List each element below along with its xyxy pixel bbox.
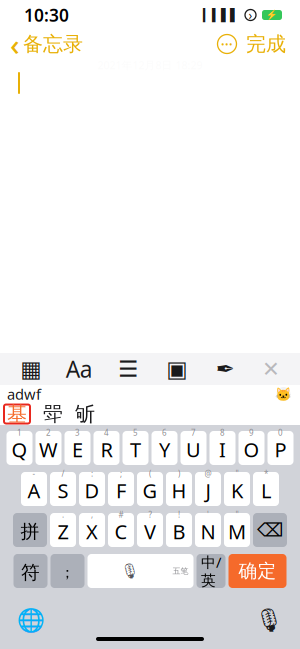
staticText: L	[261, 477, 271, 504]
button[interactable]: ?	[137, 513, 163, 547]
button[interactable]: 完成	[240, 28, 292, 60]
button[interactable]: 基	[4, 404, 30, 423]
staticText: (	[149, 468, 151, 479]
button[interactable]: Aa	[61, 356, 97, 382]
staticText: #	[118, 509, 123, 520]
button[interactable]: 斪	[72, 404, 98, 423]
staticText: Y	[159, 436, 170, 463]
staticText: 备忘录	[23, 32, 83, 56]
button[interactable]: '	[195, 513, 221, 547]
staticText: 中/英	[201, 552, 221, 590]
staticText: J	[205, 477, 210, 504]
staticText: 6	[162, 427, 167, 438]
staticText: 基	[7, 402, 27, 426]
staticText: Z	[57, 518, 68, 545]
staticText: *	[264, 468, 268, 479]
staticText: 🐱	[275, 386, 292, 402]
staticText: ,	[91, 509, 93, 520]
staticText: @	[204, 468, 211, 479]
button[interactable]: .	[50, 513, 76, 547]
staticText: 确定	[238, 559, 276, 582]
staticText: 5	[133, 427, 138, 438]
button[interactable]: ☰	[110, 356, 146, 382]
staticText: ✒	[216, 356, 235, 382]
staticText: ⚡	[266, 10, 278, 20]
button[interactable]: ✒	[207, 356, 243, 382]
button[interactable]: 4	[93, 431, 119, 465]
staticText: 🌐	[17, 607, 45, 633]
button[interactable]: @	[195, 472, 221, 506]
button[interactable]: Dictation	[252, 605, 286, 635]
button[interactable]: Delete	[253, 513, 287, 547]
button[interactable]: ▦	[13, 356, 49, 382]
button[interactable]: ,	[79, 513, 105, 547]
staticText: S	[57, 477, 68, 504]
button[interactable]: 1	[6, 431, 32, 465]
button[interactable]: 0	[267, 431, 293, 465]
button[interactable]	[50, 554, 84, 588]
button[interactable]: /	[50, 472, 76, 506]
button[interactable]: 斝	[40, 404, 66, 423]
staticText: ▎▍▌▌	[203, 8, 239, 22]
button[interactable]: "	[224, 513, 250, 547]
button[interactable]: 中/英	[196, 554, 225, 588]
button[interactable]: 5	[122, 431, 148, 465]
staticText: U	[186, 436, 201, 463]
staticText: •••	[221, 38, 233, 50]
staticText: 2	[46, 427, 51, 438]
staticText: O	[243, 436, 259, 463]
staticText: "	[235, 509, 238, 520]
staticText: T	[130, 436, 141, 463]
button[interactable]: Close	[256, 356, 286, 382]
button[interactable]: ;	[108, 472, 134, 506]
button[interactable]	[13, 513, 47, 547]
button[interactable]	[13, 554, 47, 588]
button[interactable]: )	[166, 472, 192, 506]
staticText: 7	[191, 427, 196, 438]
staticText: D	[84, 477, 99, 504]
staticText: B	[172, 518, 185, 545]
staticText: Q	[11, 436, 27, 463]
staticText: E	[72, 436, 83, 463]
button[interactable]: 6	[151, 431, 177, 465]
staticText: M	[228, 518, 246, 545]
button[interactable]: 9	[238, 431, 264, 465]
staticText: 9	[249, 427, 254, 438]
staticText: .	[62, 509, 64, 520]
staticText: 1	[17, 427, 22, 438]
staticText: W	[39, 436, 58, 463]
button[interactable]: ‹	[0, 20, 83, 67]
staticText: 符	[21, 561, 40, 584]
button[interactable]: !	[166, 513, 192, 547]
button[interactable]: (	[137, 472, 163, 506]
button[interactable]: ▣	[159, 356, 195, 382]
staticText: N	[200, 518, 215, 545]
staticText: 🎙	[120, 563, 139, 579]
button[interactable]: 2	[35, 431, 61, 465]
staticText: -	[32, 468, 35, 479]
button[interactable]: -	[21, 472, 47, 506]
button[interactable]: 7	[180, 431, 206, 465]
staticText: I	[219, 436, 226, 463]
staticText: ☰	[118, 356, 138, 382]
button[interactable]: Switch keyboard	[14, 605, 48, 635]
button[interactable]: *	[253, 472, 279, 506]
staticText: ▣	[166, 356, 187, 382]
button[interactable]: :	[79, 472, 105, 506]
staticText: G	[142, 477, 157, 504]
staticText: )	[178, 468, 180, 479]
button[interactable]: "	[224, 472, 250, 506]
staticText: 0	[278, 427, 283, 438]
staticText: ✕	[262, 357, 280, 381]
staticText: H	[171, 477, 186, 504]
staticText: P	[274, 436, 286, 463]
staticText: K	[231, 477, 243, 504]
button[interactable]: More	[214, 31, 240, 57]
button[interactable]: #	[108, 513, 134, 547]
button[interactable]: 3	[64, 431, 90, 465]
button[interactable]: Space	[87, 554, 193, 588]
staticText: ›	[248, 7, 252, 23]
button[interactable]: 8	[209, 431, 235, 465]
button[interactable]: 确定	[228, 554, 286, 588]
